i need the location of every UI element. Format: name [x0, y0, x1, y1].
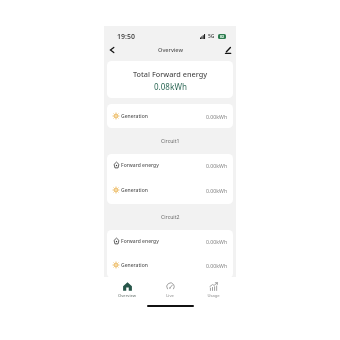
button[interactable]: Total Forward energy: [107, 61, 233, 98]
button[interactable]: Usage: [193, 282, 233, 299]
staticText: Circuit2: [161, 213, 180, 220]
button[interactable]: Generation: [107, 176, 233, 204]
staticText: Generation: [121, 262, 148, 269]
button[interactable]: Forward energy: [107, 230, 233, 252]
staticText: Circuit1: [161, 137, 180, 144]
staticText: Generation: [121, 113, 148, 120]
staticText: Forward energy: [121, 238, 159, 245]
staticText: Overview: [118, 293, 136, 299]
button[interactable]: Forward energy: [107, 154, 233, 176]
staticText: Generation: [121, 187, 148, 194]
staticText: Live: [166, 293, 174, 299]
staticText: 0.00kWh: [206, 162, 228, 169]
staticText: Total Forward energy: [133, 69, 208, 79]
staticText: Forward energy: [121, 162, 159, 169]
staticText: Usage: [207, 293, 220, 299]
button[interactable]: Live: [150, 282, 190, 299]
staticText: 0.00kWh: [206, 262, 228, 269]
staticText: 5G: [208, 33, 215, 40]
staticText: 0.08kWh: [154, 81, 187, 92]
button[interactable]: Edit: [222, 44, 234, 56]
button[interactable]: Overview: [107, 282, 147, 299]
staticText: 0.00kWh: [206, 238, 228, 245]
staticText: Overview: [158, 46, 183, 54]
button[interactable]: Back: [106, 44, 118, 56]
staticText: 82: [220, 34, 224, 39]
staticText: 0.00kWh: [206, 113, 228, 120]
button[interactable]: Generation: [107, 252, 233, 278]
staticText: 19:50: [117, 32, 135, 42]
button[interactable]: Generation: [107, 104, 233, 128]
staticText: 0.00kWh: [206, 187, 228, 194]
